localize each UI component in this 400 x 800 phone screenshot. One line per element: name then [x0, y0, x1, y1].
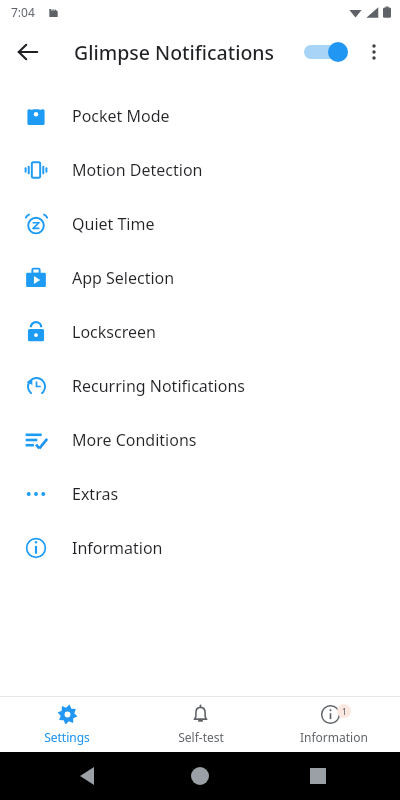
- button[interactable]: Settings: [0, 697, 134, 752]
- button[interactable]: Toggle notifications: [296, 32, 348, 72]
- staticText: Quiet Time: [72, 213, 155, 235]
- staticText: Pocket Mode: [72, 105, 170, 127]
- staticText: App Selection: [72, 267, 175, 289]
- staticText: Information: [300, 729, 368, 745]
- button[interactable]: Extras: [0, 467, 400, 521]
- staticText: 7:04: [11, 4, 35, 20]
- button[interactable]: More Conditions: [0, 413, 400, 467]
- button[interactable]: Lockscreen: [0, 305, 400, 359]
- button[interactable]: 1: [267, 697, 400, 752]
- button[interactable]: Self-test: [134, 697, 267, 752]
- staticText: Motion Detection: [72, 159, 203, 181]
- button[interactable]: Information: [0, 521, 400, 575]
- staticText: Glimpse Notifications: [74, 39, 275, 66]
- button[interactable]: Back: [6, 30, 50, 74]
- staticText: Extras: [72, 483, 119, 505]
- staticText: Lockscreen: [72, 321, 156, 343]
- staticText: Information: [72, 537, 163, 559]
- staticText: Self-test: [178, 729, 224, 745]
- button[interactable]: App Selection: [0, 251, 400, 305]
- staticText: Settings: [44, 729, 90, 745]
- staticText: Recurring Notifications: [72, 375, 245, 397]
- staticText: 1: [342, 706, 347, 717]
- button[interactable]: Pocket Mode: [0, 89, 400, 143]
- staticText: More Conditions: [72, 429, 197, 451]
- button[interactable]: Motion Detection: [0, 143, 400, 197]
- button[interactable]: Recurring Notifications: [0, 359, 400, 413]
- button[interactable]: Quiet Time: [0, 197, 400, 251]
- button[interactable]: More options: [352, 30, 396, 74]
